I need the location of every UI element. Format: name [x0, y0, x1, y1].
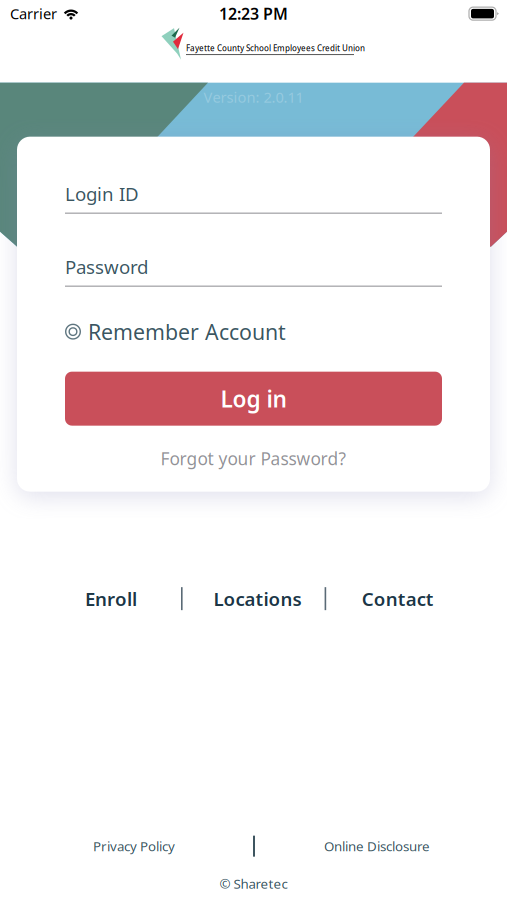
- button[interactable]: Password: [65, 258, 442, 287]
- staticText: Online Disclosure: [324, 837, 430, 855]
- staticText: Locations: [214, 586, 302, 611]
- staticText: Enroll: [85, 586, 137, 611]
- button[interactable]: Login ID: [65, 185, 442, 214]
- button[interactable]: Privacy Policy: [92, 836, 176, 856]
- button[interactable]: Locations: [212, 587, 304, 611]
- staticText: Fayette County School Employees Credit U…: [186, 43, 365, 53]
- staticText: Remember Account: [88, 317, 286, 346]
- staticText: Contact: [362, 586, 434, 611]
- staticText: Password: [65, 254, 148, 279]
- staticText: 12:23 PM: [219, 3, 288, 24]
- button[interactable]: Contact: [359, 587, 436, 611]
- staticText: Log in: [220, 384, 286, 414]
- staticText: Carrier: [10, 4, 57, 23]
- staticText: © Sharetec: [219, 875, 287, 892]
- button[interactable]: Enroll: [84, 587, 138, 611]
- staticText: Forgot your Password?: [160, 447, 346, 470]
- button[interactable]: Online Disclosure: [323, 836, 431, 856]
- button[interactable]: Forgot your Password?: [65, 446, 442, 472]
- staticText: Privacy Policy: [93, 837, 175, 855]
- button[interactable]: Log in: [65, 372, 442, 426]
- staticText: Version: 2.0.11: [203, 87, 303, 107]
- button[interactable]: Remember Account: [65, 321, 442, 343]
- staticText: Login ID: [65, 181, 139, 206]
